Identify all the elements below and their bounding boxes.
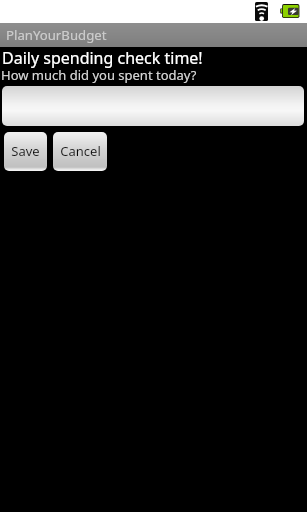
other: Battery charging xyxy=(280,4,300,19)
staticText: How much did you spent today? xyxy=(1,66,197,84)
staticText: Save xyxy=(11,142,40,160)
button[interactable] xyxy=(2,86,304,126)
staticText: Daily spending check time! xyxy=(2,47,203,69)
staticText: Cancel xyxy=(60,142,101,160)
other: Signal strength xyxy=(255,2,268,21)
button[interactable]: Cancel xyxy=(53,132,107,171)
staticText: PlanYourBudget xyxy=(6,26,107,44)
button[interactable]: Save xyxy=(4,132,47,171)
